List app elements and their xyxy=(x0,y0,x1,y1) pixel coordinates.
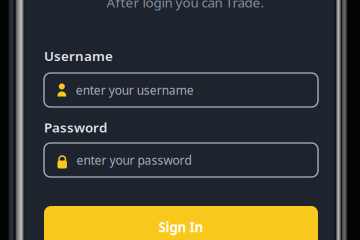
staticText: Username xyxy=(44,47,113,65)
button[interactable]: enter your password xyxy=(44,143,318,177)
staticText: enter your username xyxy=(76,82,194,98)
staticText: enter your password xyxy=(77,152,192,168)
staticText: Sign In xyxy=(158,218,203,236)
staticText: After login you can Trade. xyxy=(106,0,264,11)
button[interactable]: Sign In xyxy=(44,206,318,240)
button[interactable]: enter your username xyxy=(44,73,318,107)
staticText: Password xyxy=(44,118,107,136)
